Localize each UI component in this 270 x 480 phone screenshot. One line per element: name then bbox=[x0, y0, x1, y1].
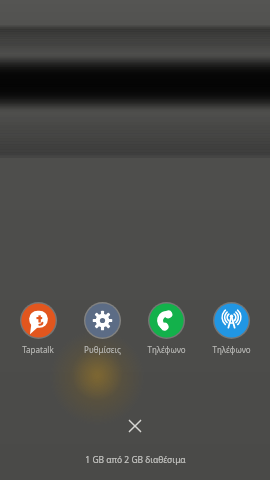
button[interactable]: Κλείσιμο bbox=[117, 408, 153, 444]
button[interactable]: Τηλέφωνο bbox=[134, 300, 199, 357]
staticText: Tapatalk bbox=[22, 344, 54, 355]
staticText: Τηλέφωνο bbox=[212, 344, 251, 355]
button[interactable]: Tapatalk bbox=[6, 300, 70, 357]
button[interactable]: Ρυθμίσεις bbox=[70, 300, 134, 357]
staticText: Ρυθμίσεις bbox=[84, 344, 121, 355]
staticText: Τηλέφωνο bbox=[147, 344, 186, 355]
button[interactable]: Τηλέφωνο bbox=[199, 300, 264, 357]
staticText: 1 GB από 2 GB διαθέσιμα bbox=[85, 454, 186, 466]
